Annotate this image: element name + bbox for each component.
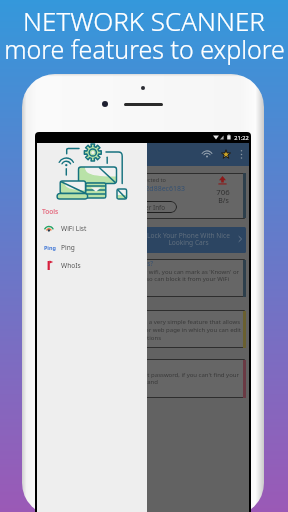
button[interactable]: Wi-Fi [199, 147, 215, 163]
staticText: Ping [61, 243, 75, 252]
staticText: router brand [121, 378, 158, 386]
staticText: 'Unknown'. You also can block it from yo… [96, 275, 229, 283]
button[interactable]: WhoIs [37, 257, 147, 274]
button[interactable]: WiFi List [37, 220, 147, 237]
button[interactable]: Router Info [120, 201, 177, 213]
staticText: When a device is connected to your wifi,… [47, 268, 239, 276]
button[interactable]: More options [237, 147, 246, 162]
staticText: Ping [44, 244, 56, 251]
staticText: Try the router default password, if you … [89, 371, 239, 379]
button[interactable] [39, 173, 246, 219]
staticText: some configurations [103, 334, 161, 342]
staticText: WhoIs [61, 261, 81, 270]
staticText: What are Known devices? [77, 259, 153, 268]
button[interactable]: Ping [37, 239, 147, 256]
button[interactable] [39, 227, 246, 253]
staticText: Router admin page is a very simple featu… [86, 318, 240, 326]
staticText: Router Info [131, 203, 166, 212]
staticText: B/s [218, 196, 229, 206]
button[interactable]: Rate [219, 147, 234, 162]
staticText: Tools [42, 207, 59, 216]
staticText: you to enter your router web page in whi… [83, 326, 241, 334]
button[interactable] [39, 310, 246, 348]
staticText: Looking Cars [168, 238, 209, 247]
staticText: ap2d88ec6183 [137, 184, 185, 194]
staticText: Connected to [130, 176, 166, 184]
staticText: Lock Your Phone With Nice [147, 231, 230, 240]
staticText: more features to explore [4, 32, 285, 66]
button[interactable] [39, 359, 246, 398]
staticText: 21:22 [234, 134, 249, 142]
staticText: NETWORK SCANNER [23, 3, 265, 37]
staticText: WiFi List [61, 224, 87, 233]
staticText: 706 [216, 187, 230, 198]
button[interactable] [39, 259, 246, 297]
